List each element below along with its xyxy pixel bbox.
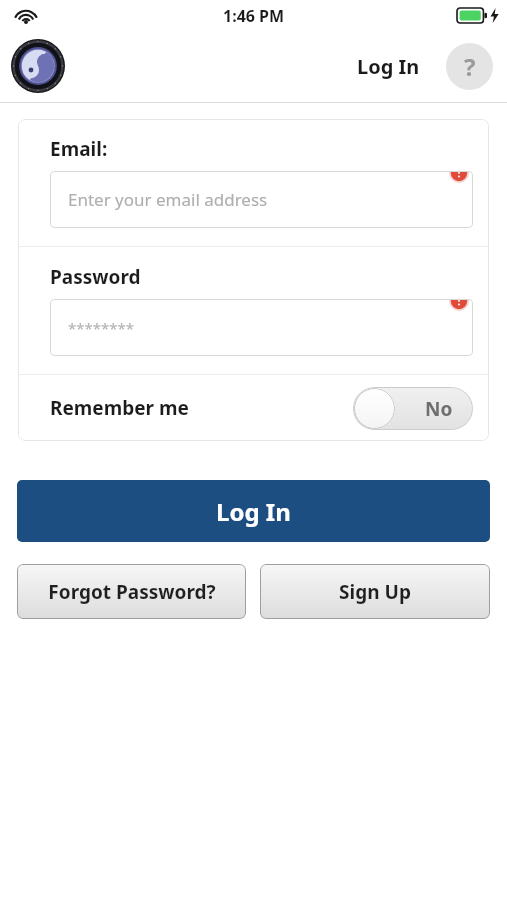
staticText: ******** — [68, 318, 135, 338]
button[interactable]: Remember me — [18, 375, 489, 441]
button[interactable]: Forgot Password? — [17, 564, 246, 619]
button[interactable]: Log In — [353, 47, 424, 86]
staticText: No — [425, 396, 453, 422]
button[interactable]: Sign Up — [260, 564, 490, 619]
button[interactable]: App logo — [11, 39, 65, 93]
staticText: ? — [464, 50, 476, 83]
staticText: Forgot Password? — [48, 579, 216, 605]
button[interactable]: Log In — [17, 480, 490, 542]
button[interactable]: Enter your email address — [50, 171, 473, 228]
button[interactable]: ******** — [50, 299, 473, 356]
button[interactable]: Help — [446, 43, 493, 90]
staticText: Sign Up — [339, 579, 411, 605]
staticText: Email: — [50, 136, 108, 162]
button[interactable]: Remember me toggle, off — [353, 387, 473, 430]
staticText: Password — [50, 264, 141, 290]
staticText: Log In — [357, 53, 420, 80]
staticText: Remember me — [50, 395, 189, 421]
staticText: 1:46 PM — [223, 5, 285, 27]
staticText: Log In — [216, 495, 291, 528]
staticText: Enter your email address — [68, 188, 268, 211]
